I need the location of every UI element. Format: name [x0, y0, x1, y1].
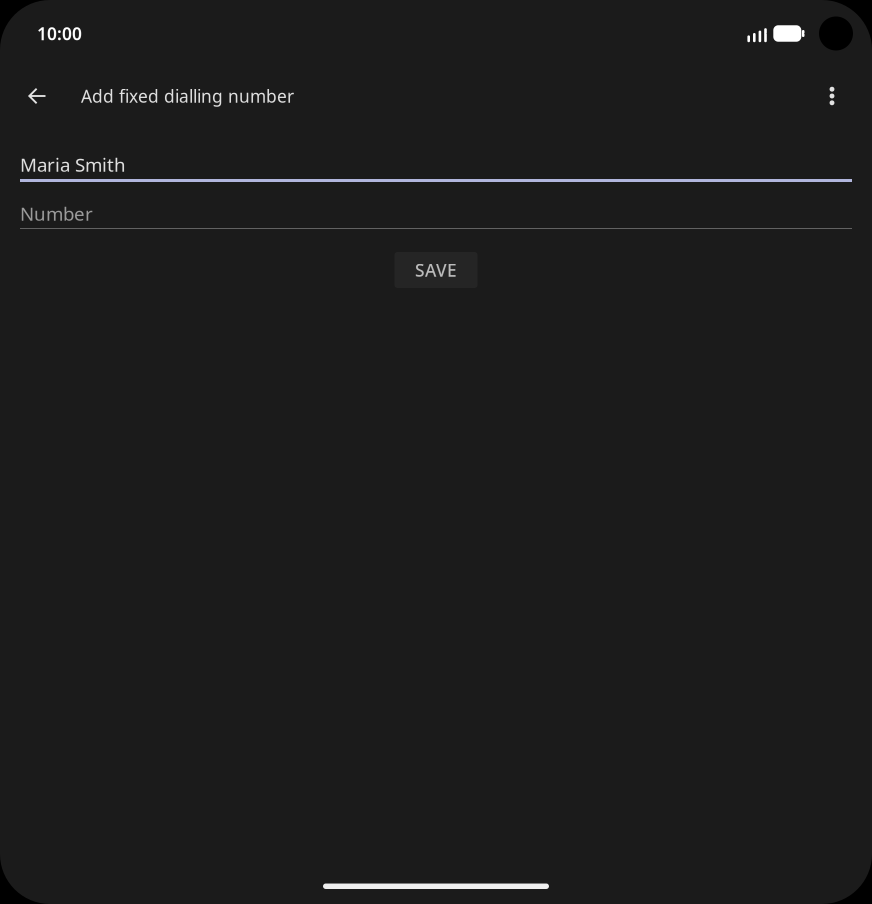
- staticText: Maria Smith: [20, 152, 126, 177]
- button[interactable]: Number: [20, 199, 852, 229]
- staticText: 10:00: [37, 22, 82, 45]
- button[interactable]: SAVE: [394, 252, 477, 288]
- staticText: Number: [20, 201, 93, 226]
- button[interactable]: More options: [804, 68, 860, 124]
- button[interactable]: Name: [20, 150, 852, 182]
- button[interactable]: Navigate up: [9, 68, 65, 124]
- staticText: Add fixed dialling number: [81, 84, 294, 107]
- staticText: SAVE: [415, 258, 457, 281]
